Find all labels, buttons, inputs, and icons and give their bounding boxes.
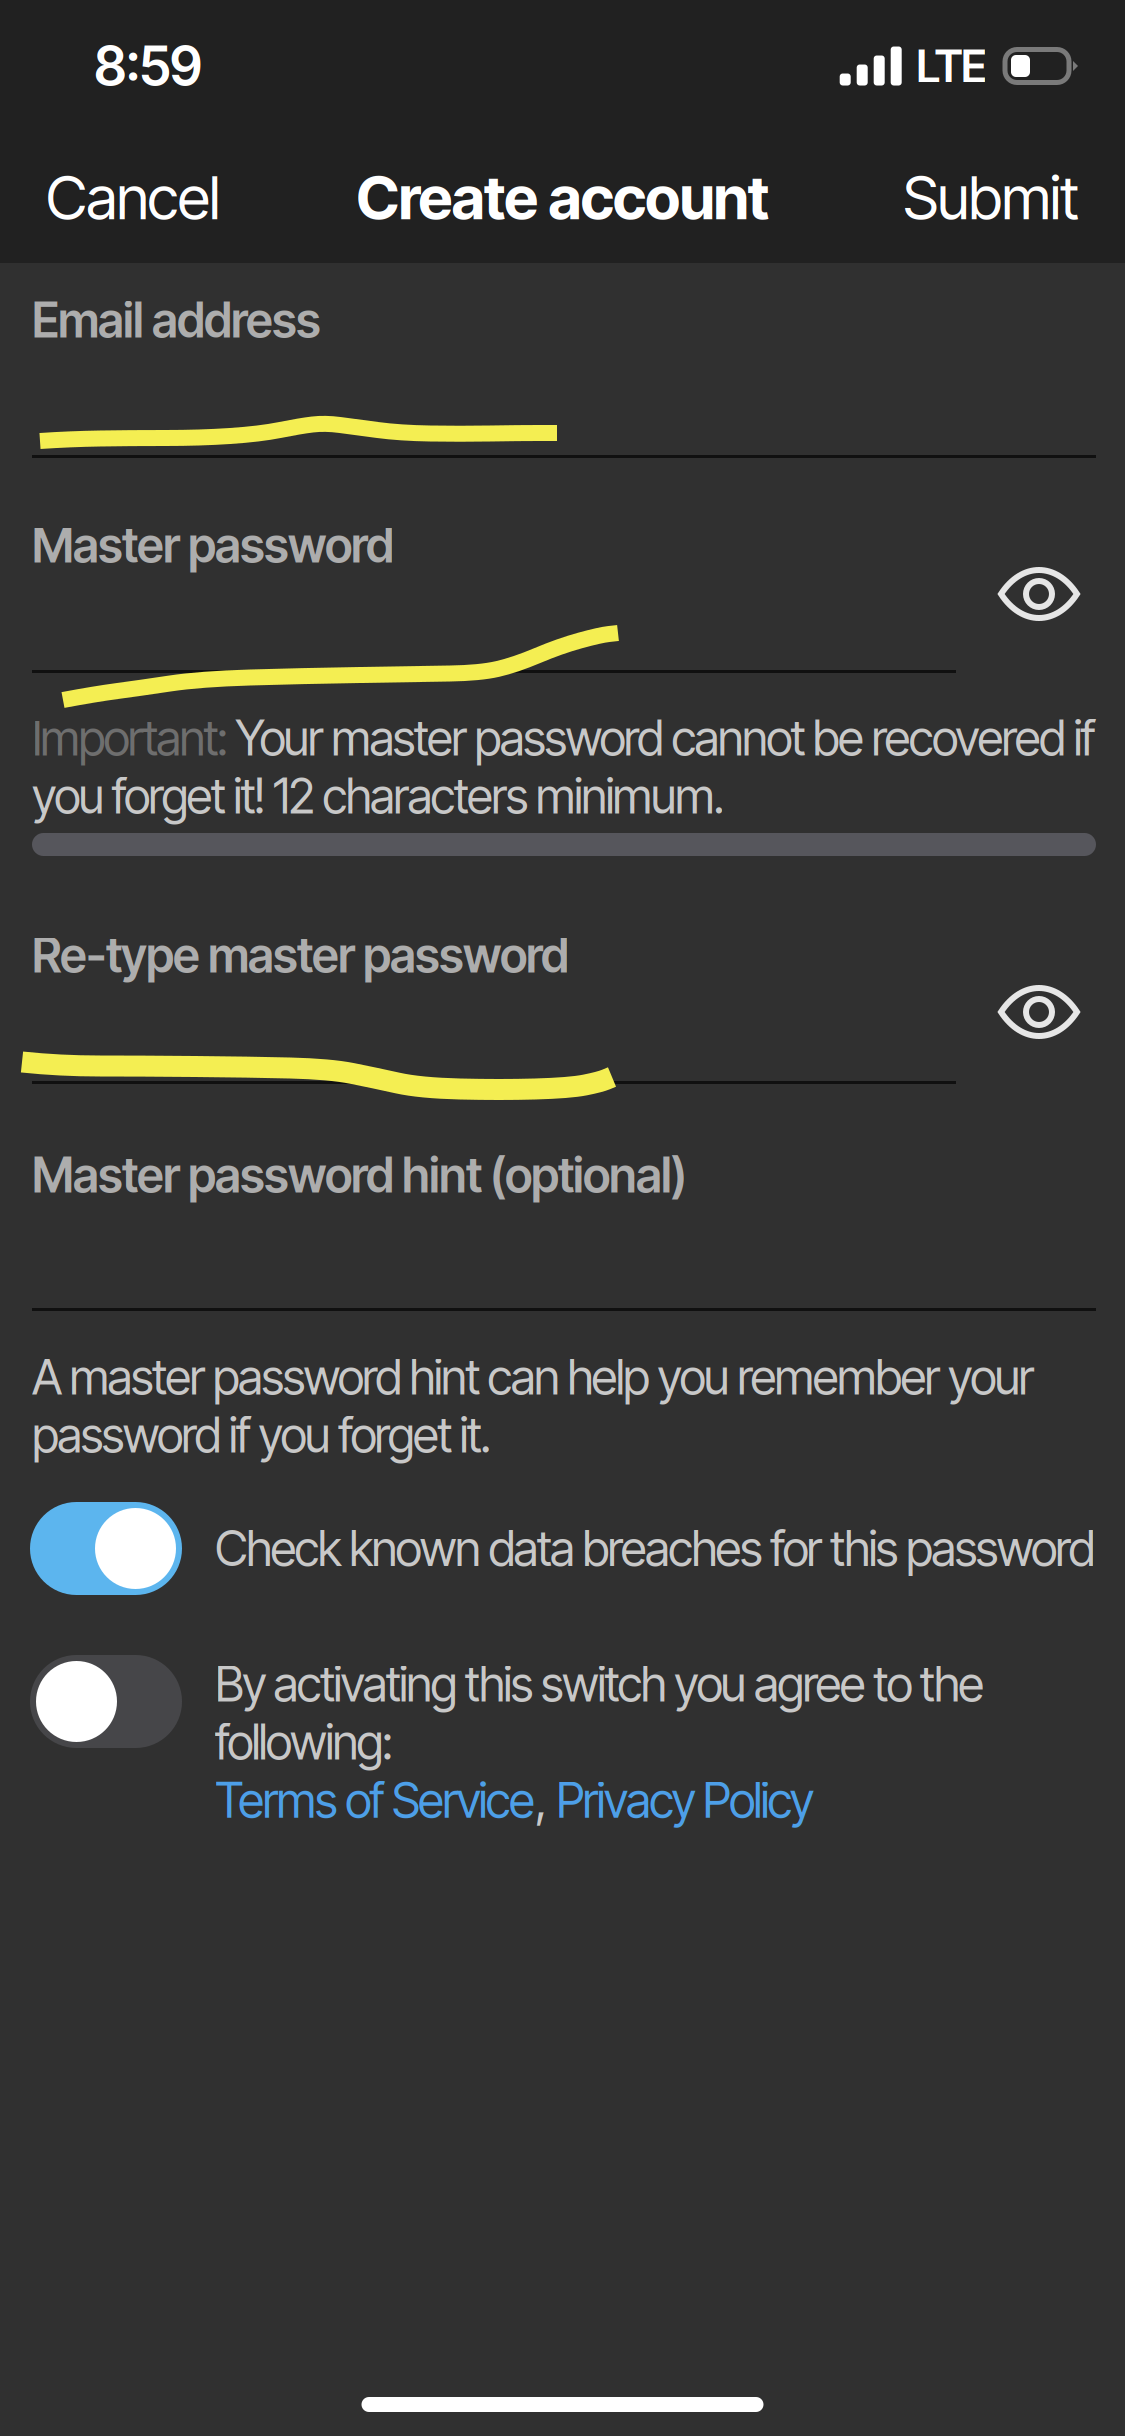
staticText: Submit	[903, 161, 1079, 234]
staticText: Important: Your master password cannot b…	[32, 709, 1096, 825]
staticText: A master password hint can help you reme…	[32, 1348, 1035, 1464]
button[interactable]: Terms of Service	[215, 1771, 535, 1829]
button[interactable]: Check known data breaches for this passw…	[30, 1502, 182, 1595]
staticText: Master password hint (optional)	[32, 1146, 687, 1204]
staticText: Check known data breaches for this passw…	[215, 1519, 1095, 1578]
staticText: LTE	[916, 39, 987, 93]
button[interactable]: Show master password	[998, 568, 1080, 620]
button[interactable]: Agree to terms of service and privacy po…	[30, 1655, 182, 1748]
button[interactable]: Show re-typed master password	[998, 986, 1080, 1038]
staticText: Email address	[32, 291, 321, 349]
staticText: Terms of Service	[215, 1771, 535, 1829]
staticText: ,	[535, 1771, 547, 1829]
button[interactable]: Privacy Policy	[547, 1771, 814, 1829]
staticText: Privacy Policy	[547, 1771, 814, 1829]
staticText: Master password	[32, 516, 394, 574]
staticText: By activating this switch you agree to t…	[215, 1655, 984, 1771]
staticText: Re-type master password	[32, 926, 569, 984]
button[interactable]: Cancel	[0, 132, 250, 263]
staticText: 8:59	[94, 34, 203, 98]
button[interactable]: Submit	[873, 132, 1125, 263]
staticText: Create account	[356, 161, 769, 234]
staticText: Cancel	[46, 161, 220, 234]
